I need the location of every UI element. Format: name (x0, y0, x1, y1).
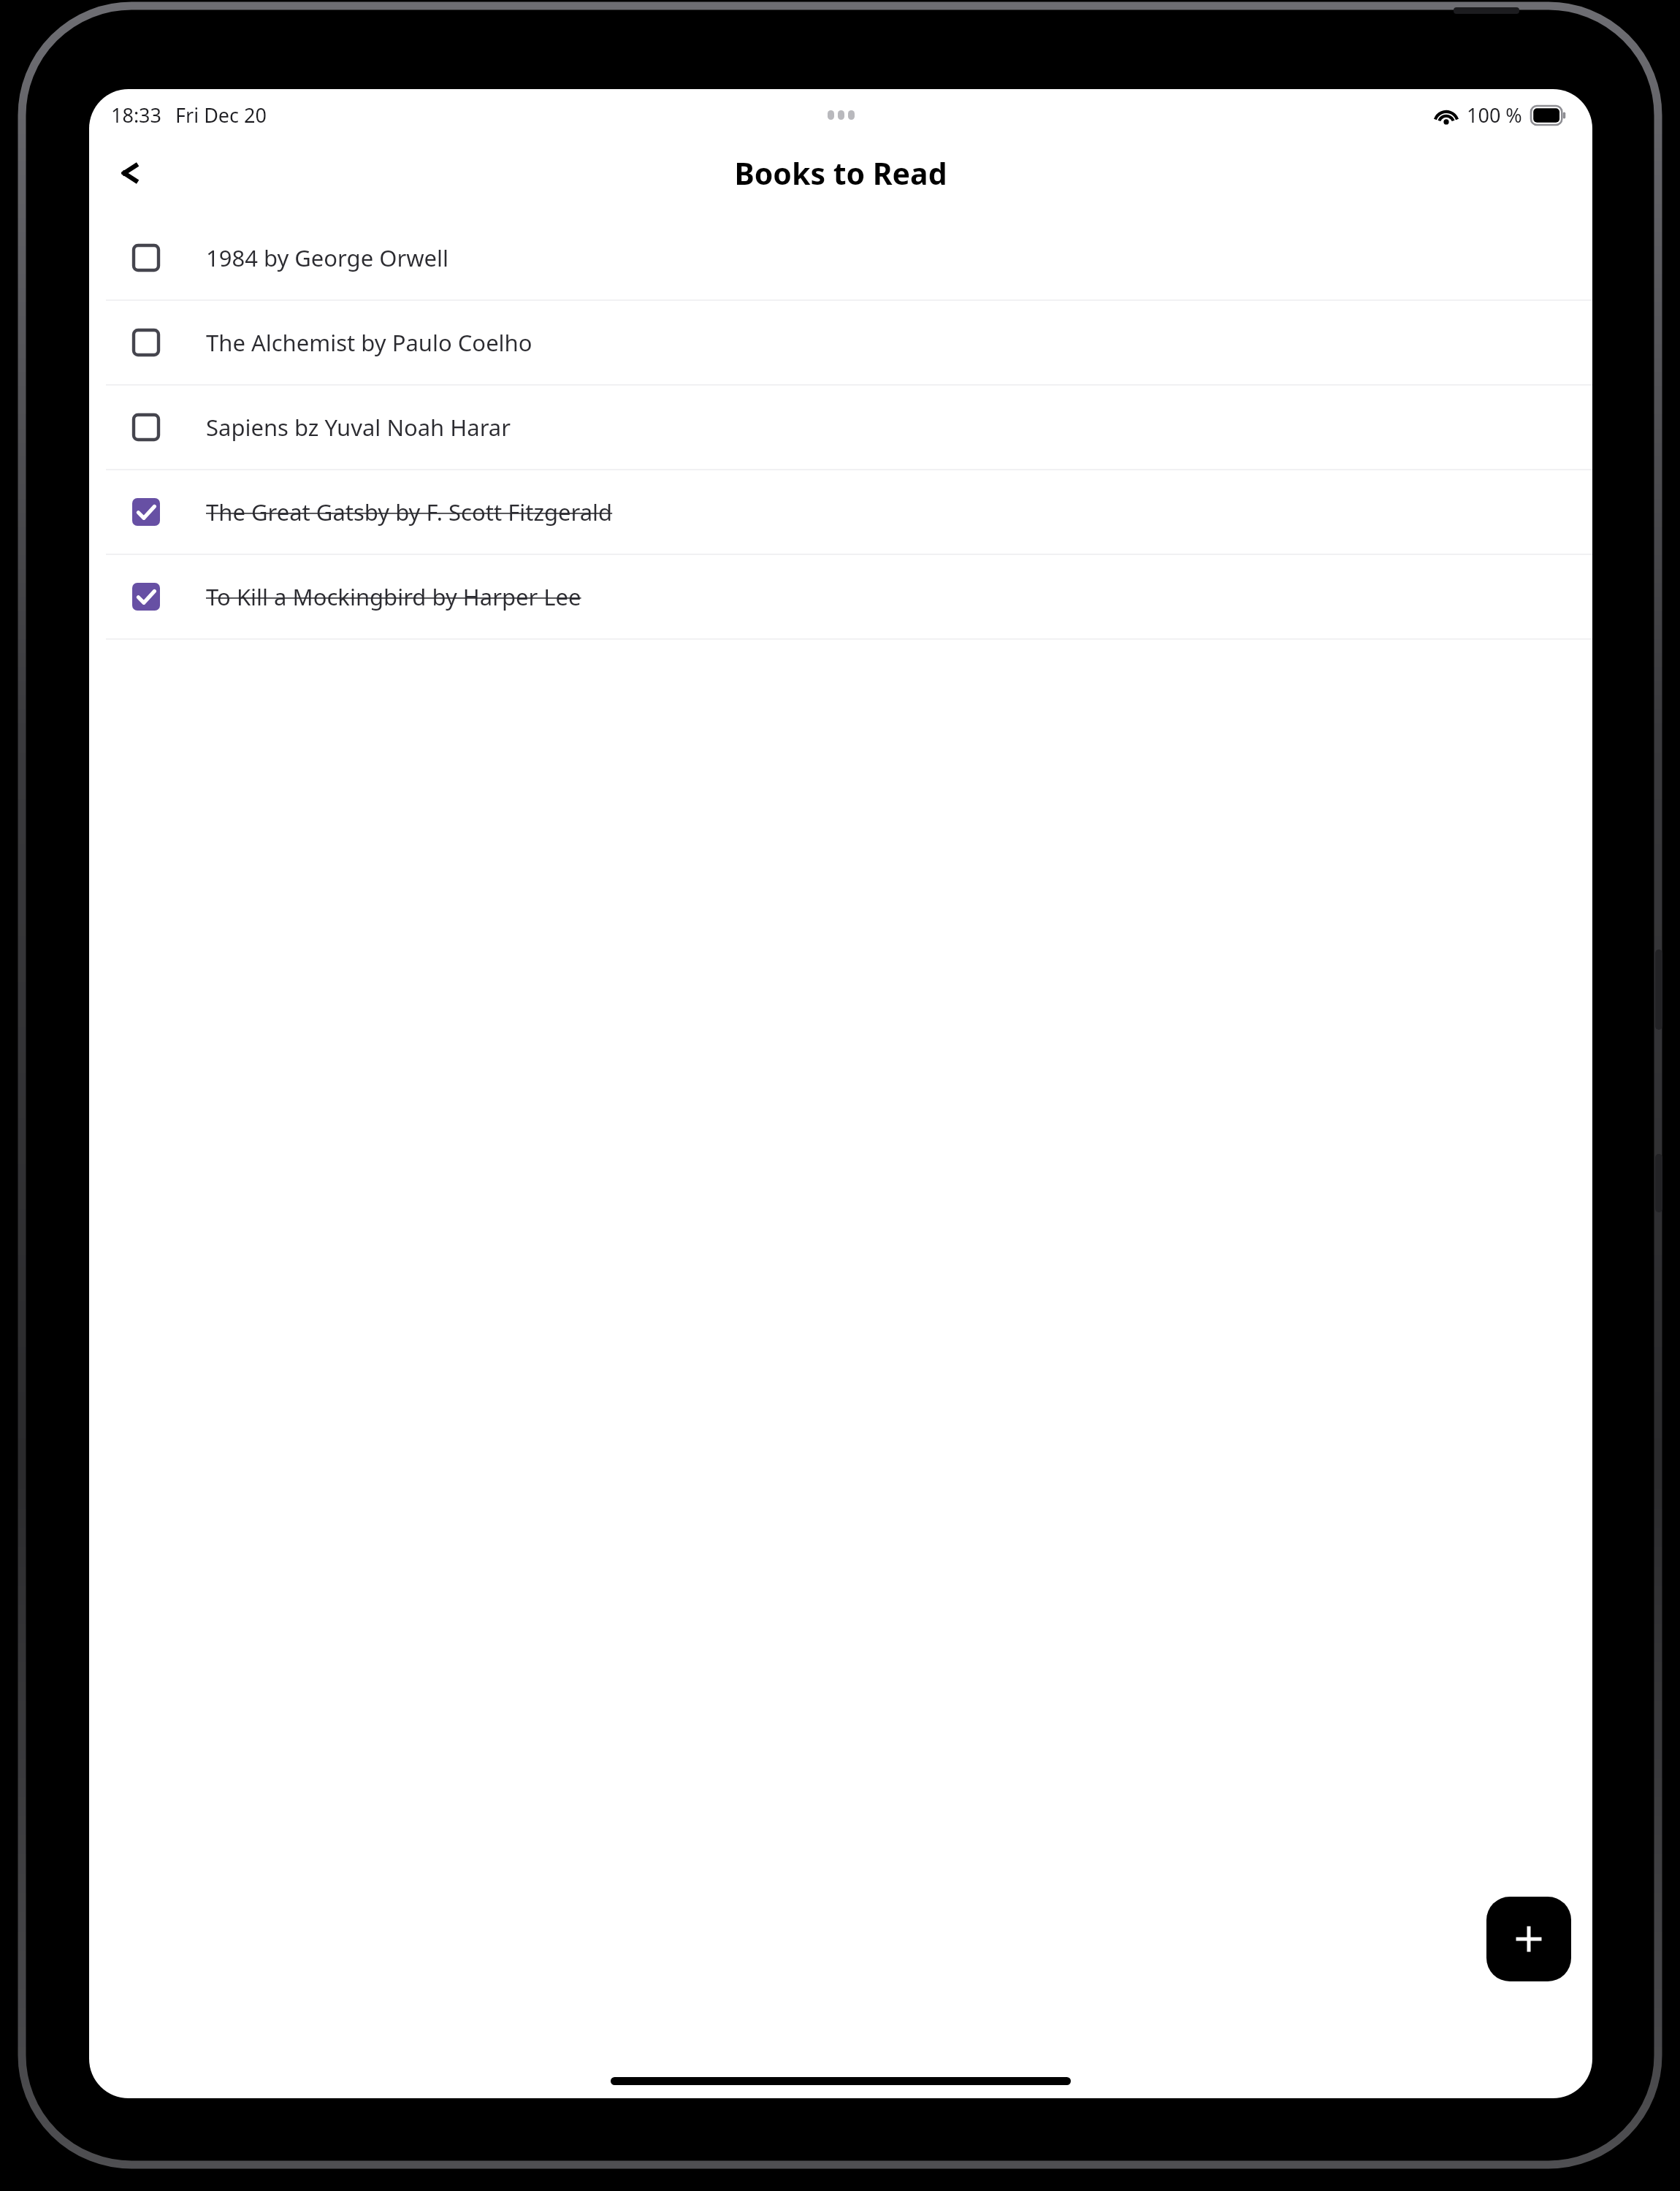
button[interactable]: Back (99, 142, 161, 204)
staticText: The Great Gatsby by F. Scott Fitzgerald (206, 497, 613, 527)
button[interactable]: The Alchemist by Paulo Coelho (89, 301, 1592, 384)
button[interactable]: Add book (1486, 1897, 1571, 1981)
staticText: To Kill a Mockingbird by Harper Lee (206, 581, 581, 612)
staticText: 1984 by George Orwell (206, 242, 449, 273)
button[interactable]: To Kill a Mockingbird by Harper Lee (89, 555, 1592, 638)
staticText: The Alchemist by Paulo Coelho (206, 327, 532, 358)
staticText: Sapiens bz Yuval Noah Harar (206, 412, 511, 443)
button[interactable]: Sapiens bz Yuval Noah Harar (89, 386, 1592, 469)
staticText: Books to Read (734, 153, 947, 194)
staticText: 18:33 (111, 102, 162, 129)
staticText: 100 % (1467, 102, 1522, 129)
staticText: Fri Dec 20 (175, 102, 267, 129)
button[interactable]: 1984 by George Orwell (89, 216, 1592, 299)
button[interactable]: The Great Gatsby by F. Scott Fitzgerald (89, 470, 1592, 554)
